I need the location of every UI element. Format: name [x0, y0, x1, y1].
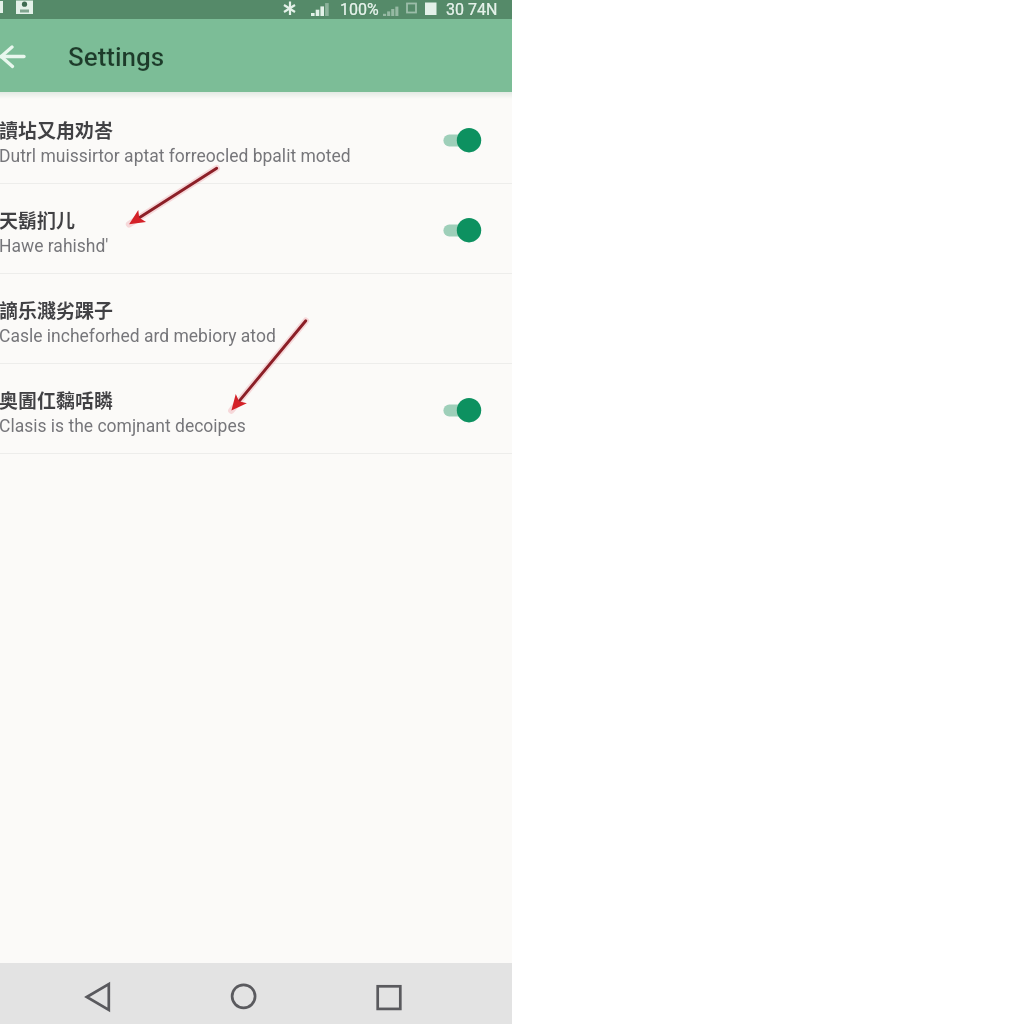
staticText: Settings	[68, 42, 165, 72]
staticText: Casle incheforhed ard mebiory atod	[0, 326, 276, 347]
button[interactable]: Toggle setting	[438, 117, 486, 157]
button[interactable]: 讀坫又甪劝峇	[0, 94, 512, 183]
button[interactable]: 天鬍扪儿	[0, 184, 512, 273]
staticText: Hawe rahishd'	[0, 236, 109, 257]
button[interactable]: Toggle setting	[438, 387, 486, 427]
button[interactable]: 奥圊仜黐咶瞵	[0, 364, 512, 453]
staticText: 讀坫又甪劝峇	[0, 116, 114, 144]
staticText: 謫乐濺劣踝子	[0, 296, 114, 324]
staticText: 天鬍扪儿	[0, 206, 76, 234]
button[interactable]: Toggle setting	[438, 207, 486, 247]
staticText: 30 74N	[446, 0, 498, 19]
button[interactable]: Home	[214, 966, 274, 1024]
staticText: Clasis is the comjnant decoipes	[0, 416, 246, 437]
button[interactable]: 謫乐濺劣踝子	[0, 274, 512, 363]
staticText: Dutrl muissirtor aptat forreocled bpalit…	[0, 146, 351, 167]
button[interactable]: Back	[68, 966, 128, 1024]
staticText: 奥圊仜黐咶瞵	[0, 386, 114, 414]
staticText: 100%	[340, 0, 379, 19]
button[interactable]: Recents	[359, 966, 419, 1024]
button[interactable]: Navigate up	[0, 29, 41, 83]
